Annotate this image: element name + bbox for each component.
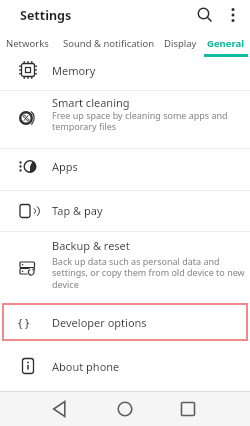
staticText: Backup & reset xyxy=(52,238,130,253)
staticText: About phone xyxy=(52,359,120,374)
button[interactable]: About phone xyxy=(0,342,250,388)
staticText: { } xyxy=(18,315,30,330)
button[interactable]: Backup & reset xyxy=(0,232,250,302)
staticText: Networks xyxy=(6,37,49,50)
staticText: Free up space by cleaning some apps and … xyxy=(52,109,228,133)
button[interactable]: Apps xyxy=(0,149,250,190)
staticText: Apps xyxy=(52,159,78,174)
button[interactable]: Memory xyxy=(0,56,250,90)
staticText: Display xyxy=(164,37,197,50)
button[interactable] xyxy=(223,5,243,25)
staticText: Back up data such as personal data and s… xyxy=(52,255,245,291)
button[interactable] xyxy=(195,5,215,25)
button[interactable]: Sound & notification xyxy=(54,30,164,56)
staticText: Memory xyxy=(52,63,96,78)
staticText: Developer options xyxy=(52,315,147,330)
button[interactable]: { } xyxy=(2,303,248,341)
button[interactable]: Smart cleaning xyxy=(0,91,250,148)
staticText: Tap & pay xyxy=(52,203,103,218)
button[interactable] xyxy=(115,399,135,419)
staticText: Smart cleaning xyxy=(52,95,130,110)
button[interactable]: General xyxy=(200,30,250,56)
button[interactable]: Display xyxy=(160,30,200,56)
button[interactable] xyxy=(178,399,198,419)
staticText: Sound & notification xyxy=(63,37,155,50)
staticText: General xyxy=(207,37,244,50)
button[interactable]: Networks xyxy=(0,30,54,56)
button[interactable]: Tap & pay xyxy=(0,191,250,231)
button[interactable] xyxy=(50,399,70,419)
staticText: Settings xyxy=(20,7,72,24)
